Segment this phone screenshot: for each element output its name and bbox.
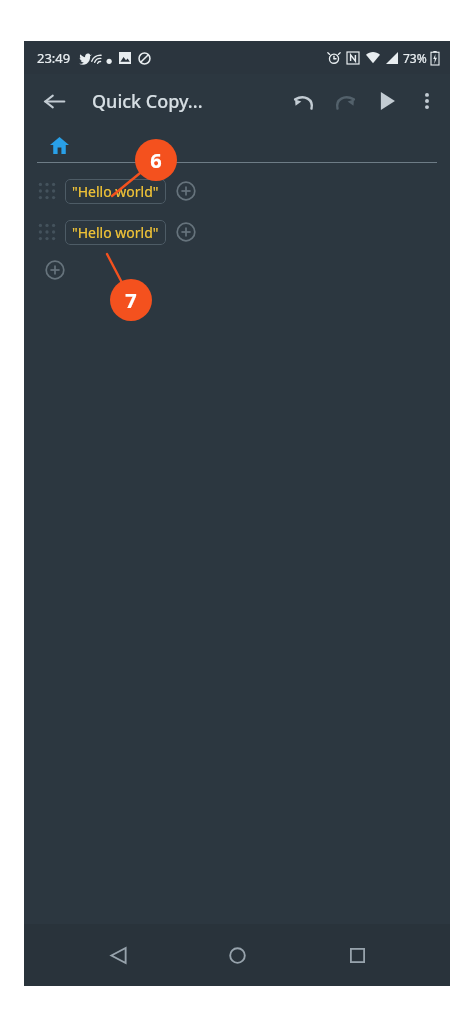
button[interactable]: Home xyxy=(38,128,80,162)
button[interactable]: Back xyxy=(34,81,74,121)
button[interactable]: Add block xyxy=(41,256,69,284)
staticText: "Hello world" xyxy=(72,182,159,201)
button[interactable]: "Hello world" xyxy=(72,223,159,242)
staticText: 6 xyxy=(150,147,162,174)
button[interactable]: Redo xyxy=(324,80,366,122)
staticText: Quick Copy... xyxy=(92,89,203,114)
button[interactable]: "Hello world" xyxy=(36,175,200,207)
button[interactable]: Home xyxy=(211,929,263,981)
button[interactable]: "Hello world" xyxy=(72,182,159,201)
button[interactable]: Back xyxy=(92,929,144,981)
staticText: "Hello world" xyxy=(72,223,159,242)
button[interactable]: More options xyxy=(408,82,446,120)
button[interactable]: Add argument xyxy=(172,177,200,205)
button[interactable]: Add argument xyxy=(172,218,200,246)
button[interactable]: "Hello world" xyxy=(36,216,200,248)
staticText: 7 xyxy=(125,287,137,314)
button[interactable]: Recents xyxy=(331,929,383,981)
button[interactable]: Undo xyxy=(282,80,324,122)
staticText: 73% xyxy=(403,50,427,66)
staticText: 23:49 xyxy=(37,49,71,67)
button[interactable]: Run xyxy=(366,80,408,122)
